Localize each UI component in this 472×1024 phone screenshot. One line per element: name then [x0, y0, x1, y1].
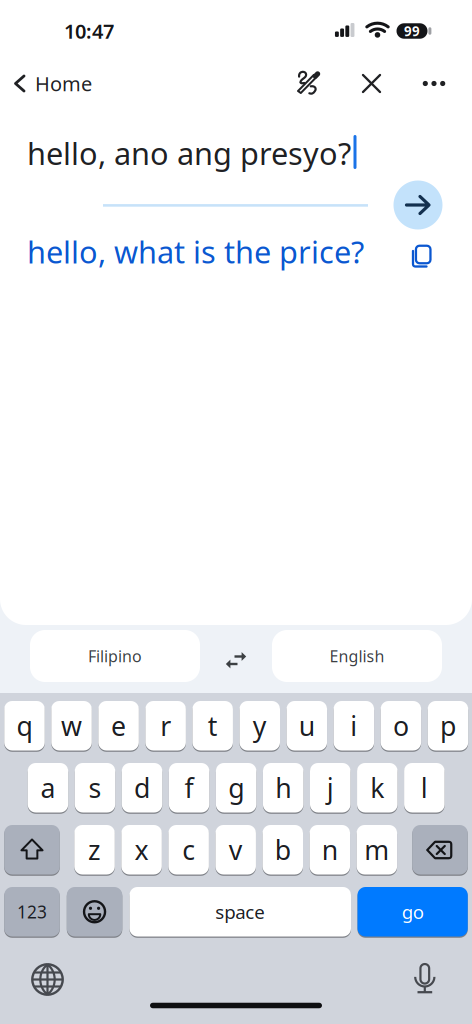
button[interactable]: i	[334, 701, 374, 750]
staticText: s	[88, 770, 101, 805]
button[interactable]: e	[98, 701, 139, 750]
staticText: w	[61, 708, 82, 743]
staticText: 123	[17, 900, 47, 923]
staticText: k	[370, 770, 384, 805]
button[interactable]: English	[272, 630, 442, 682]
button[interactable]: u	[286, 701, 327, 750]
staticText: h	[275, 770, 291, 805]
button[interactable]: q	[4, 701, 45, 750]
button[interactable]: Translate	[393, 180, 442, 229]
staticText: r	[160, 708, 171, 743]
button[interactable]: Shift	[4, 825, 60, 874]
staticText: n	[322, 832, 338, 867]
button[interactable]: j	[310, 763, 350, 812]
staticText: o	[393, 708, 409, 743]
button[interactable]: f	[169, 763, 209, 812]
staticText: x	[135, 832, 149, 867]
button[interactable]: l	[404, 763, 445, 812]
button[interactable]: Clear text	[356, 68, 386, 98]
button[interactable]: t	[192, 701, 233, 750]
staticText: m	[364, 832, 389, 867]
button[interactable]: k	[357, 763, 397, 812]
button[interactable]: Delete	[412, 825, 468, 874]
button[interactable]: go	[357, 887, 468, 936]
button[interactable]: w	[51, 701, 92, 750]
staticText: u	[299, 708, 315, 743]
staticText: p	[440, 708, 456, 743]
button[interactable]: Copy translation	[404, 239, 438, 273]
staticText: d	[134, 770, 150, 805]
button[interactable]: Handwriting input	[289, 66, 323, 100]
staticText: f	[185, 770, 194, 805]
staticText: j	[327, 770, 334, 805]
staticText: i	[350, 708, 357, 743]
staticText: v	[229, 832, 243, 867]
staticText: q	[16, 708, 32, 743]
staticText: 99	[404, 22, 420, 40]
button[interactable]: o	[381, 701, 421, 750]
button[interactable]: Back to Home	[14, 63, 106, 103]
staticText: go	[402, 899, 424, 924]
staticText: Home	[35, 70, 92, 97]
button[interactable]: space	[129, 887, 351, 936]
staticText: Filipino	[88, 645, 142, 667]
button[interactable]: r	[145, 701, 186, 750]
staticText: space	[215, 899, 265, 924]
button[interactable]: h	[263, 763, 303, 812]
button[interactable]: Dictate	[408, 961, 442, 995]
button[interactable]: Numbers	[4, 887, 60, 936]
button[interactable]: p	[428, 701, 468, 750]
staticText: English	[329, 645, 384, 667]
button[interactable]: Swap languages	[223, 647, 249, 673]
button[interactable]: Next keyboard	[29, 961, 65, 997]
button[interactable]: y	[239, 701, 280, 750]
staticText: hello, what is the price?	[27, 231, 364, 272]
button[interactable]: More options	[418, 68, 450, 98]
button[interactable]: m	[357, 825, 397, 874]
button[interactable]: d	[122, 763, 162, 812]
button[interactable]: x	[121, 825, 162, 874]
button[interactable]: g	[216, 763, 256, 812]
button[interactable]: v	[215, 825, 256, 874]
staticText: c	[182, 832, 195, 867]
staticText: l	[421, 770, 428, 805]
staticText: hello, ano ang presyo?	[27, 133, 351, 173]
staticText: a	[40, 770, 55, 805]
button[interactable]: z	[74, 825, 115, 874]
staticText: e	[111, 708, 126, 743]
button[interactable]: s	[75, 763, 115, 812]
button[interactable]: c	[168, 825, 209, 874]
button[interactable]: Filipino	[30, 630, 200, 682]
button[interactable]: Emoji	[67, 887, 122, 936]
button[interactable]: n	[310, 825, 350, 874]
staticText: t	[208, 708, 218, 743]
button[interactable]: a	[28, 763, 68, 812]
staticText: z	[88, 832, 101, 867]
staticText: b	[275, 832, 291, 867]
staticText: 10:47	[64, 18, 114, 44]
staticText: g	[228, 770, 244, 805]
button[interactable]: b	[262, 825, 303, 874]
staticText: y	[253, 708, 267, 743]
